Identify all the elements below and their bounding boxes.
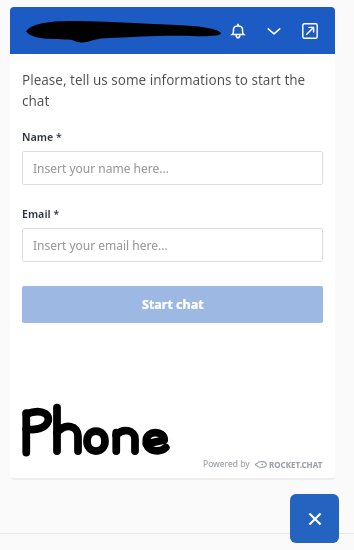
button[interactable]: Insert your email here... bbox=[22, 228, 323, 262]
button[interactable]: Close chat bbox=[290, 494, 339, 543]
staticText: Powered by bbox=[203, 458, 250, 470]
button[interactable]: Minimize chat bbox=[259, 16, 289, 46]
button[interactable]: Insert your name here... bbox=[22, 151, 323, 185]
button[interactable]: Start chat bbox=[22, 286, 323, 323]
staticText: Insert your name here... bbox=[33, 160, 169, 176]
staticText: Insert your email here... bbox=[33, 237, 168, 253]
staticText: Please, tell us some informations to sta… bbox=[22, 71, 306, 110]
button[interactable]: Notifications bbox=[223, 16, 253, 46]
button[interactable]: Open in new window bbox=[295, 16, 325, 46]
staticText: Name * bbox=[22, 130, 62, 144]
staticText: Email * bbox=[22, 207, 60, 221]
staticText: ROCKET.CHAT bbox=[269, 459, 323, 470]
staticText: Start chat bbox=[142, 296, 204, 313]
